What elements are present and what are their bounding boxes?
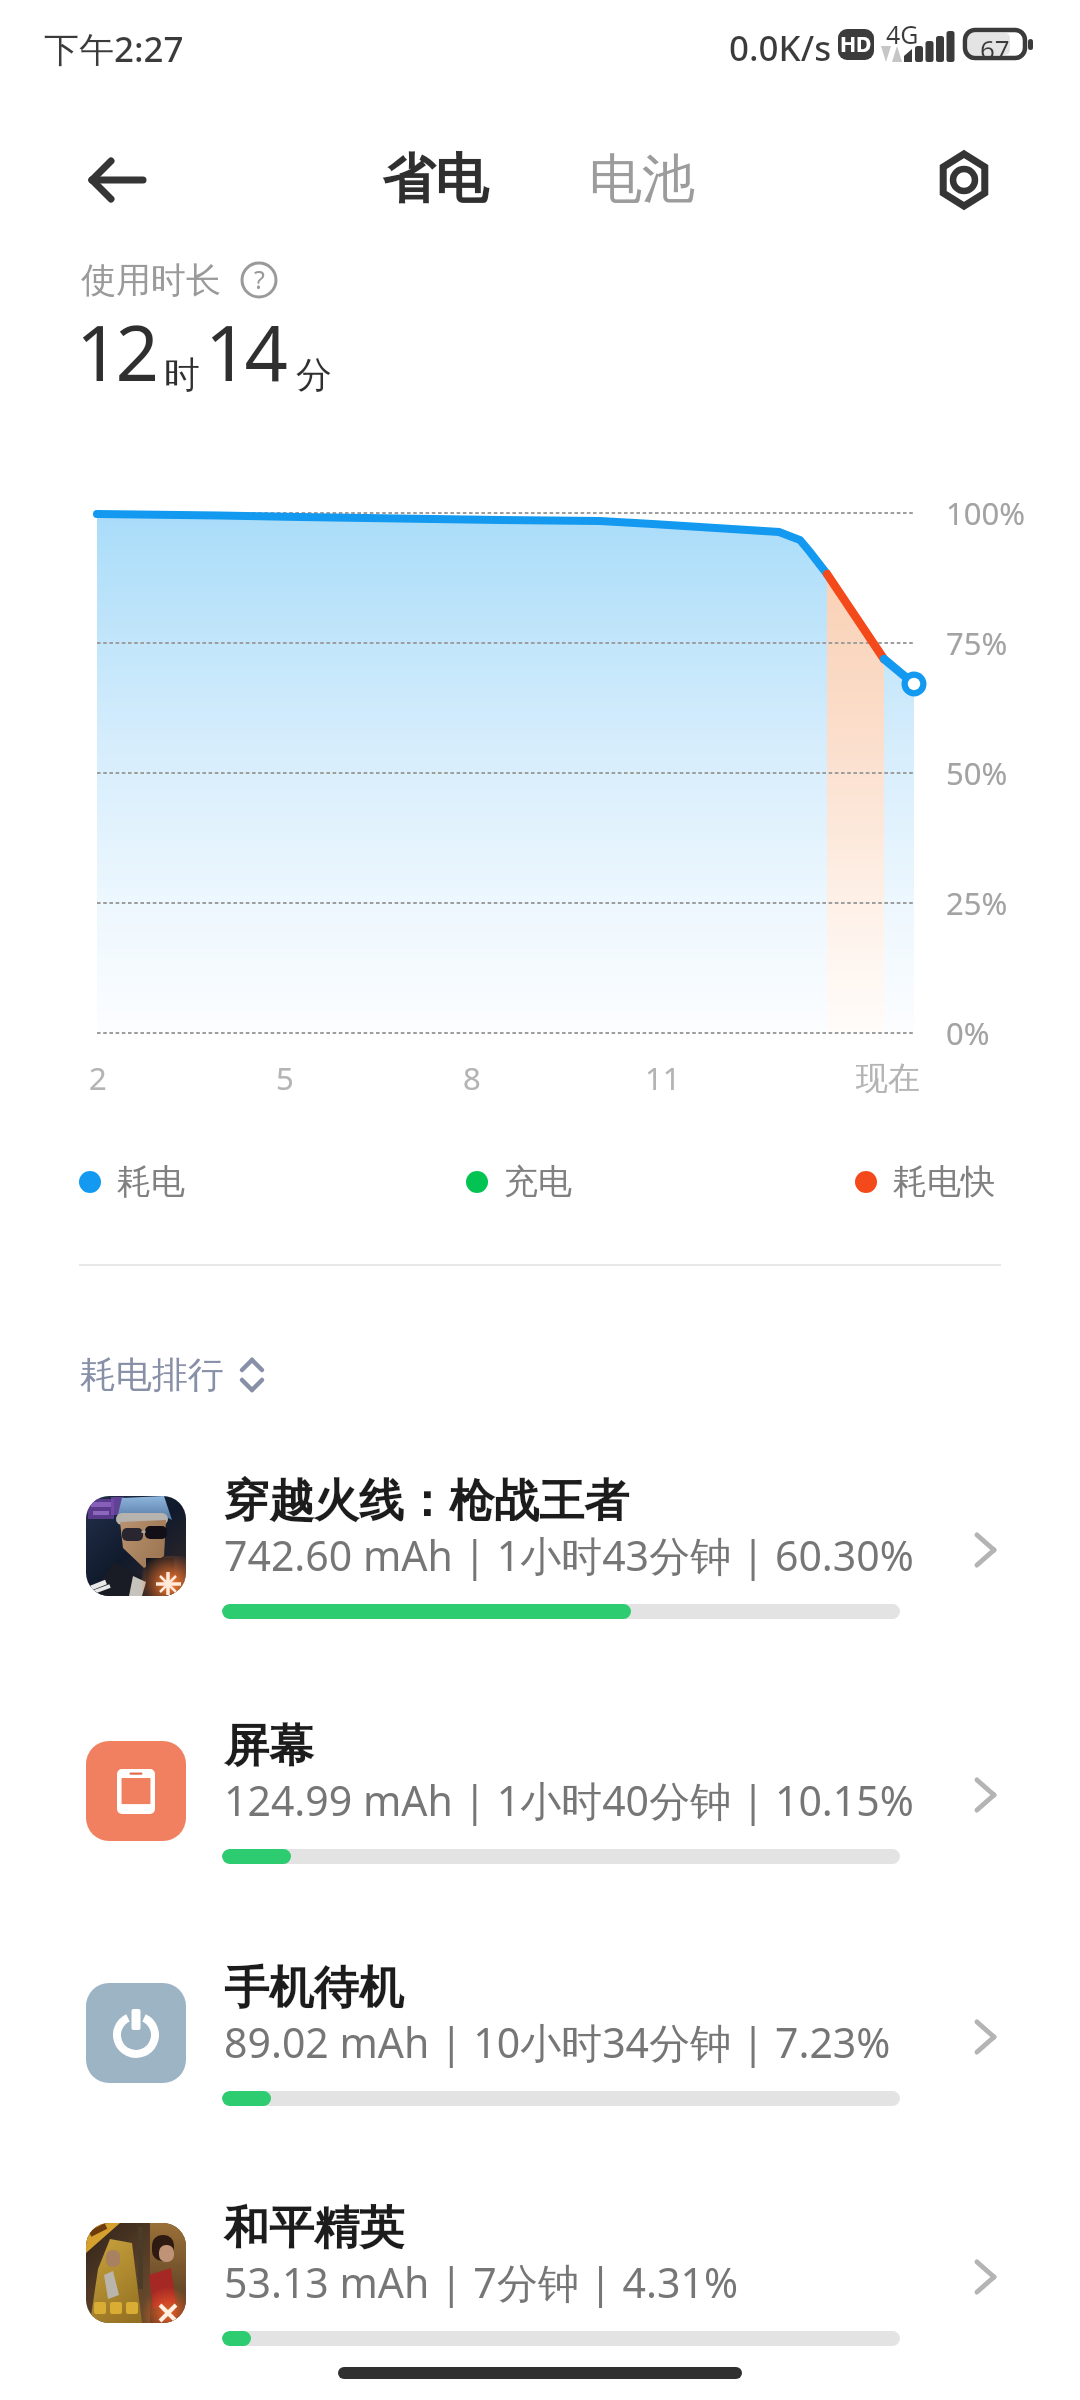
button[interactable]: 耗电 xyxy=(79,1160,185,1203)
button[interactable]: 充电 xyxy=(466,1160,572,1203)
staticText: 耗电排行 xyxy=(80,1352,224,1397)
button[interactable]: 电池 xyxy=(575,140,709,219)
staticText: 12 xyxy=(76,300,155,404)
button[interactable]: 手机待机 xyxy=(0,1930,1080,2172)
staticText: 11 xyxy=(645,1057,681,1099)
button[interactable]: 屏幕 xyxy=(0,1688,1080,1930)
staticText: 省电 xyxy=(382,146,488,213)
button[interactable]: 耗电快 xyxy=(855,1160,995,1203)
staticText: 分 xyxy=(296,352,332,397)
staticText: 124.99 mAh | 1小时40分钟 | 10.15% xyxy=(224,1772,914,1828)
button[interactable]: Back xyxy=(88,140,168,220)
staticText: 67 xyxy=(980,31,1010,65)
staticText: 和平精英 xyxy=(224,2200,404,2257)
staticText: 75% xyxy=(946,622,1008,664)
button[interactable]: Help xyxy=(237,258,281,302)
staticText: 耗电快 xyxy=(893,1160,995,1203)
staticText: 742.60 mAh | 1小时43分钟 | 60.30% xyxy=(224,1527,914,1583)
staticText: 89.02 mAh | 10小时34分钟 | 7.23% xyxy=(224,2014,891,2070)
staticText: ? xyxy=(254,262,265,296)
staticText: 下午2:27 xyxy=(44,25,184,73)
staticText: 电池 xyxy=(589,146,695,213)
button[interactable]: 穿越火线：枪战王者 xyxy=(0,1443,1080,1685)
staticText: 5 xyxy=(276,1057,294,1099)
staticText: 时 xyxy=(164,352,200,397)
staticText: 4G xyxy=(886,17,919,51)
staticText: 14 xyxy=(205,300,284,404)
staticText: 使用时长 xyxy=(81,258,221,302)
staticText: 屏幕 xyxy=(224,1718,314,1775)
staticText: 耗电 xyxy=(117,1160,185,1203)
button[interactable]: 省电 xyxy=(368,140,502,219)
staticText: 0.0K/s xyxy=(729,24,832,72)
button[interactable]: 耗电排行 xyxy=(80,1352,272,1397)
staticText: 现在 xyxy=(856,1058,920,1098)
staticText: 充电 xyxy=(504,1160,572,1203)
staticText: 100% xyxy=(946,492,1025,534)
staticText: 53.13 mAh | 7分钟 | 4.31% xyxy=(224,2254,739,2310)
staticText: 0% xyxy=(946,1012,990,1054)
button[interactable]: 和平精英 xyxy=(0,2170,1080,2400)
staticText: 50% xyxy=(946,752,1008,794)
staticText: 手机待机 xyxy=(224,1960,404,2017)
staticText: HD xyxy=(840,30,872,59)
staticText: 穿越火线：枪战王者 xyxy=(224,1473,629,1530)
staticText: 25% xyxy=(946,882,1008,924)
button[interactable]: Settings xyxy=(937,140,1017,220)
staticText: 2 xyxy=(89,1057,107,1099)
staticText: 8 xyxy=(463,1057,481,1099)
